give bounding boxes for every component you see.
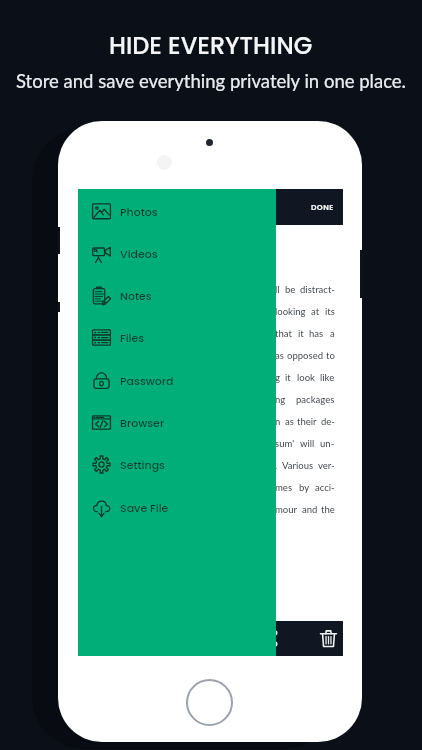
staticText: has — [309, 328, 324, 339]
staticText: the — [321, 504, 335, 515]
staticText: and — [302, 504, 318, 515]
staticText: acci- — [315, 482, 335, 493]
staticText: Browser — [120, 415, 165, 430]
staticText: DONE — [311, 202, 334, 213]
staticText: at — [311, 306, 320, 317]
staticText: distract- — [300, 284, 335, 295]
button[interactable]: Videos — [78, 238, 276, 269]
staticText: their — [297, 416, 317, 427]
staticText: Settings — [120, 457, 165, 472]
staticText: un- — [320, 438, 335, 449]
staticText: sum' — [275, 438, 295, 449]
staticText: packages — [296, 394, 335, 405]
button[interactable]: Browser — [78, 407, 276, 438]
button[interactable]: Password — [78, 365, 276, 396]
staticText: looking — [275, 306, 306, 317]
staticText: Save File — [120, 500, 169, 515]
staticText: mes — [275, 482, 293, 493]
button[interactable]: Delete — [276, 621, 343, 656]
staticText: will — [300, 438, 315, 449]
button[interactable]: Settings — [78, 449, 276, 480]
staticText: its — [325, 306, 335, 317]
staticText: look — [297, 372, 315, 383]
button[interactable]: Files — [78, 322, 276, 353]
staticText: Store and save everything privately in o… — [16, 70, 406, 92]
staticText: like — [320, 372, 335, 383]
staticText: Various — [282, 460, 314, 471]
staticText: Files — [120, 330, 145, 345]
staticText: de- — [321, 416, 335, 427]
button[interactable]: Notes — [78, 280, 276, 311]
staticText: mour — [275, 504, 298, 515]
staticText: HIDE EVERYTHING — [109, 29, 313, 63]
staticText: Password — [120, 373, 174, 388]
staticText: be — [285, 284, 296, 295]
staticText: to — [326, 350, 335, 361]
staticText: it — [298, 328, 304, 339]
staticText: it — [285, 372, 291, 383]
staticText: opposed — [287, 350, 323, 361]
staticText: ng — [275, 394, 286, 405]
staticText: ll — [275, 284, 280, 295]
staticText: as — [285, 416, 294, 427]
staticText: Notes — [120, 288, 152, 303]
staticText: as — [275, 350, 284, 361]
staticText: . — [275, 460, 278, 471]
staticText: Videos — [120, 246, 158, 261]
staticText: Photos — [120, 204, 158, 219]
staticText: ver- — [318, 460, 335, 471]
staticText: n — [275, 416, 281, 427]
staticText: a — [330, 328, 335, 339]
staticText: that — [275, 328, 292, 339]
button[interactable]: Save File — [78, 492, 276, 523]
button[interactable]: DONE — [276, 189, 343, 225]
button[interactable]: Photos — [78, 196, 276, 227]
staticText: g — [275, 372, 280, 383]
staticText: by — [299, 482, 310, 493]
